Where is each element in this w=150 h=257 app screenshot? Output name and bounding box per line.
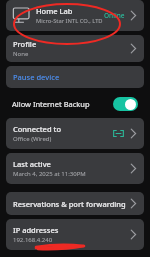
staticText: Online [104, 11, 125, 20]
staticText: 192.168.4.240 [13, 236, 53, 244]
staticText: March 4, 2025 at 11:30PM [13, 170, 86, 178]
staticText: Profile [13, 39, 37, 49]
button[interactable]: Pause device [6, 66, 144, 88]
staticText: Home Lab [36, 6, 73, 16]
staticText: Last active [13, 159, 51, 169]
button[interactable]: Profile [6, 35, 144, 62]
staticText: Reservations & port forwarding [13, 199, 130, 209]
staticText: Pause device [13, 72, 60, 82]
staticText: Office (Wired) [13, 135, 52, 143]
button[interactable]: Home Lab [6, 0, 144, 31]
button[interactable]: Reservations & port forwarding [6, 192, 144, 215]
button[interactable]: Last active [6, 153, 144, 184]
staticText: Allow Internet Backup [12, 99, 113, 109]
button[interactable]: Allow Internet Backup toggle [113, 97, 138, 111]
button[interactable]: Allow Internet Backup [0, 93, 150, 114]
button[interactable]: Connected to [6, 118, 144, 149]
staticText: Connected to [13, 124, 61, 134]
staticText: None [13, 50, 29, 58]
staticText: IP addresses [13, 225, 59, 235]
staticText: Micro-Star INTL CO., LTD [36, 17, 103, 25]
button[interactable]: IP addresses [6, 219, 144, 250]
